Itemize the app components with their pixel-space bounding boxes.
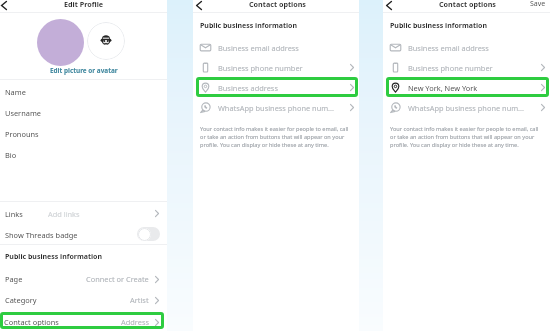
staticText: Business phone number (408, 63, 541, 73)
button[interactable]: Business email address (390, 37, 545, 57)
staticText: Contact options (249, 0, 306, 9)
staticText: Business address (218, 83, 350, 93)
staticText: Show Threads badge (5, 230, 78, 240)
button[interactable]: Show Threads badge (0, 223, 167, 244)
button[interactable]: Back (194, 0, 203, 10)
staticText: Your contact info makes it easier for pe… (200, 125, 352, 149)
staticText: Bio (5, 150, 17, 160)
staticText: Connect or Create (86, 274, 149, 284)
button[interactable]: Page (0, 267, 167, 288)
staticText: Business email address (218, 43, 354, 53)
button[interactable]: Name (0, 80, 167, 101)
staticText: Name (5, 87, 26, 97)
staticText: New York, New York (408, 83, 541, 93)
button[interactable]: Back (384, 0, 393, 10)
button[interactable]: Links (0, 202, 167, 223)
button[interactable]: WhatsApp business phone num... (200, 97, 354, 117)
button[interactable]: Username (0, 101, 167, 122)
button[interactable]: Category (0, 288, 167, 309)
staticText: Public business information (200, 21, 298, 31)
staticText: Page (5, 274, 23, 284)
staticText: Pronouns (5, 129, 39, 139)
button[interactable]: Pronouns (0, 122, 167, 143)
staticText: Edit Profile (64, 0, 104, 9)
button[interactable]: WhatsApp business phone num... (390, 97, 545, 117)
button[interactable]: Back (0, 0, 8, 10)
staticText: Business email address (408, 43, 545, 53)
staticText: Category (5, 295, 37, 305)
button[interactable]: Business address (200, 77, 354, 97)
staticText: Address (121, 317, 149, 327)
button[interactable]: Save (530, 0, 546, 9)
button[interactable]: New York, New York (390, 77, 545, 97)
button[interactable]: Business phone number (200, 57, 354, 77)
button[interactable]: Avatar (87, 22, 125, 60)
staticText: WhatsApp business phone num... (218, 103, 350, 113)
staticText: WhatsApp business phone num... (408, 103, 541, 113)
staticText: Links (5, 209, 23, 219)
staticText: Your contact info makes it easier for pe… (390, 125, 543, 149)
staticText: Contact options (439, 0, 496, 9)
staticText: Public business information (390, 21, 488, 31)
staticText: Artist (130, 295, 149, 305)
staticText: Add links (48, 209, 80, 219)
staticText: Public business information (5, 252, 103, 262)
button[interactable]: Business email address (200, 37, 354, 57)
button[interactable]: Contact options (0, 312, 164, 329)
staticText: Username (5, 108, 41, 118)
button[interactable]: Profile picture (37, 19, 84, 66)
button[interactable]: Bio (0, 143, 167, 164)
button[interactable]: Business phone number (390, 57, 545, 77)
button[interactable]: Edit picture or avatar (50, 66, 118, 75)
staticText: Business phone number (218, 63, 350, 73)
staticText: Contact options (4, 317, 59, 327)
